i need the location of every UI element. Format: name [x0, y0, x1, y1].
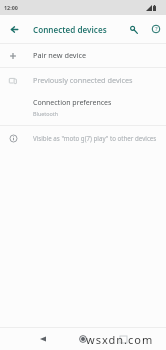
button[interactable]: Connection preferences	[0, 96, 166, 121]
staticText: 12:00	[4, 4, 18, 11]
staticText: Visible as "moto g(7) play" to other dev…	[33, 134, 157, 142]
button[interactable]: Recents	[113, 329, 133, 349]
button[interactable]: Pair new device	[0, 44, 166, 67]
staticText: Bluetooth	[33, 110, 59, 117]
button[interactable]: Back	[33, 329, 53, 349]
button[interactable]: Previously connected devices	[0, 68, 166, 92]
staticText: ?	[155, 25, 158, 33]
button[interactable]: Search	[123, 19, 143, 39]
staticText: wsxdn.com	[86, 332, 154, 347]
button[interactable]: Back	[5, 20, 24, 39]
staticText: Previously connected devices	[33, 75, 133, 85]
staticText: Connected devices	[33, 24, 107, 35]
staticText: Pair new device	[33, 50, 87, 60]
button[interactable]: Help	[146, 19, 166, 39]
staticText: Connection preferences	[33, 98, 112, 108]
button[interactable]: Home	[73, 329, 93, 349]
